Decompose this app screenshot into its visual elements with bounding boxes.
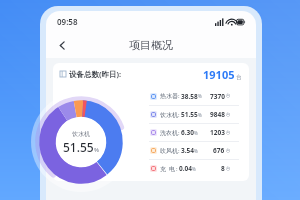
staticText: 09:58 — [57, 16, 78, 27]
staticText: 充 电 — [160, 165, 176, 173]
staticText: % — [194, 148, 198, 154]
staticText: 9848 — [210, 110, 225, 119]
staticText: 台 — [226, 130, 231, 136]
staticText: 8 — [221, 164, 225, 173]
staticText: : — [178, 111, 180, 119]
staticText: 台 — [226, 148, 231, 154]
staticText: : — [178, 129, 180, 137]
staticText: 19105 — [203, 67, 235, 82]
staticText: 洗衣机 — [160, 129, 178, 137]
button[interactable]: 吹风机 — [150, 142, 238, 159]
staticText: 台 — [226, 112, 231, 118]
button[interactable]: 热水器 — [150, 87, 238, 105]
staticText: 0.04 — [179, 164, 192, 173]
staticText: 51.55 — [181, 110, 198, 119]
staticText: : — [176, 165, 178, 173]
staticText: 吹风机 — [160, 147, 178, 155]
staticText: % — [192, 166, 196, 172]
staticText: : — [178, 92, 180, 100]
staticText: 台 — [226, 93, 231, 99]
staticText: % — [94, 146, 99, 154]
button[interactable]: 饮水机 — [150, 106, 238, 123]
staticText: 台 — [226, 166, 231, 172]
staticText: 饮水机 — [72, 130, 90, 138]
staticText: 设备总数(昨日): — [69, 69, 122, 79]
staticText: % — [194, 130, 198, 136]
staticText: 3.54 — [181, 146, 194, 155]
button[interactable]: 洗衣机 — [150, 124, 238, 141]
staticText: 项目概况 — [129, 38, 173, 52]
staticText: 饮水机 — [160, 111, 178, 119]
button[interactable]: 充 电 — [150, 160, 238, 177]
staticText: : — [178, 147, 180, 155]
staticText: % — [198, 112, 202, 118]
staticText: 热水器 — [160, 92, 178, 100]
staticText: 6.30 — [181, 128, 194, 137]
button[interactable]: Back — [52, 35, 72, 55]
staticText: 676 — [213, 146, 225, 155]
staticText: 1203 — [210, 128, 225, 137]
staticText: 7370 — [210, 92, 225, 101]
staticText: % — [198, 93, 202, 99]
staticText: 51.55 — [63, 139, 94, 155]
staticText: 台 — [236, 74, 242, 81]
staticText: 38.58 — [181, 92, 198, 101]
